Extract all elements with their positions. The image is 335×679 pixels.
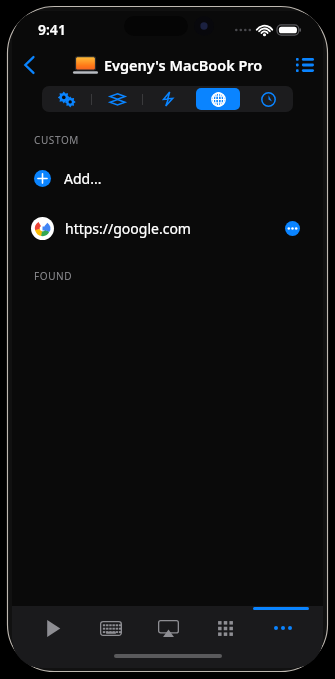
button[interactable]: Recent — [246, 88, 290, 110]
button[interactable]: Play — [24, 606, 82, 650]
button[interactable]: Apps — [197, 606, 254, 650]
staticText: CUSTOM — [34, 133, 79, 147]
button[interactable]: Keyboard — [82, 606, 140, 650]
button[interactable]: Settings — [45, 88, 88, 110]
button[interactable]: More — [254, 606, 311, 650]
button[interactable]: Screen mirroring — [140, 606, 197, 650]
button[interactable]: https://google.com — [12, 209, 323, 247]
button[interactable]: More options — [279, 215, 305, 241]
staticText: Evgeny's MacBook Pro — [104, 55, 263, 75]
button[interactable]: Back — [12, 49, 46, 81]
staticText: 9:41 — [38, 20, 66, 39]
staticText: FOUND — [34, 269, 73, 283]
button[interactable]: List — [287, 49, 323, 81]
button[interactable]: Add... — [12, 161, 323, 195]
staticText: Add... — [64, 169, 102, 188]
button[interactable]: Layers — [95, 88, 139, 110]
button[interactable]: Shortcuts — [146, 88, 190, 110]
button[interactable]: Web — [196, 88, 240, 110]
staticText: https://google.com — [65, 219, 279, 238]
